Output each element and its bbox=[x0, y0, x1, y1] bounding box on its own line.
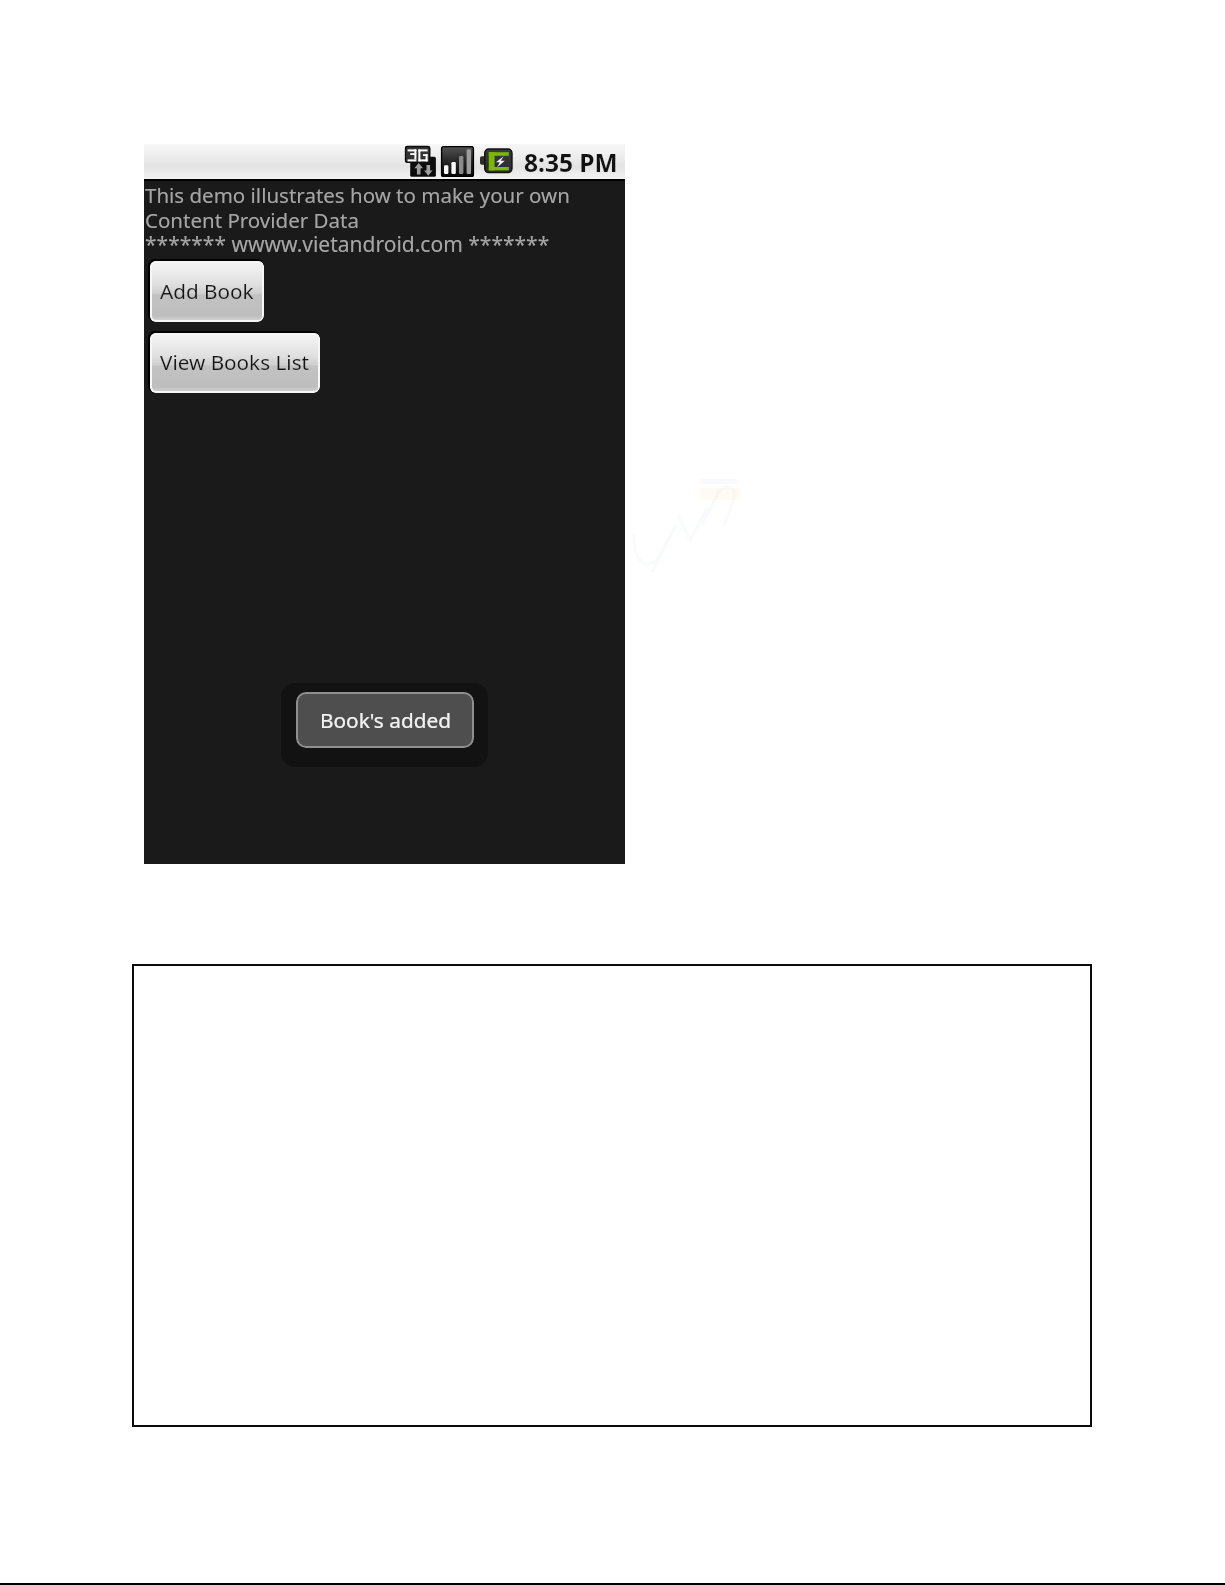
staticText: 8:35 PM bbox=[524, 146, 618, 179]
staticText: Add Book bbox=[160, 277, 254, 305]
staticText: This demo illustrates how to make your o… bbox=[145, 181, 617, 234]
staticText: ******* wwww.vietandroid.com ******* bbox=[145, 230, 550, 259]
other: Signal strength bbox=[441, 146, 474, 177]
staticText: View Books List bbox=[160, 348, 310, 376]
button[interactable]: View Books List bbox=[148, 331, 320, 393]
staticText: Book's added bbox=[320, 706, 451, 734]
other: 3G data connection bbox=[405, 146, 436, 177]
other: Battery charging bbox=[480, 149, 512, 173]
button[interactable]: Add Book bbox=[148, 259, 264, 322]
